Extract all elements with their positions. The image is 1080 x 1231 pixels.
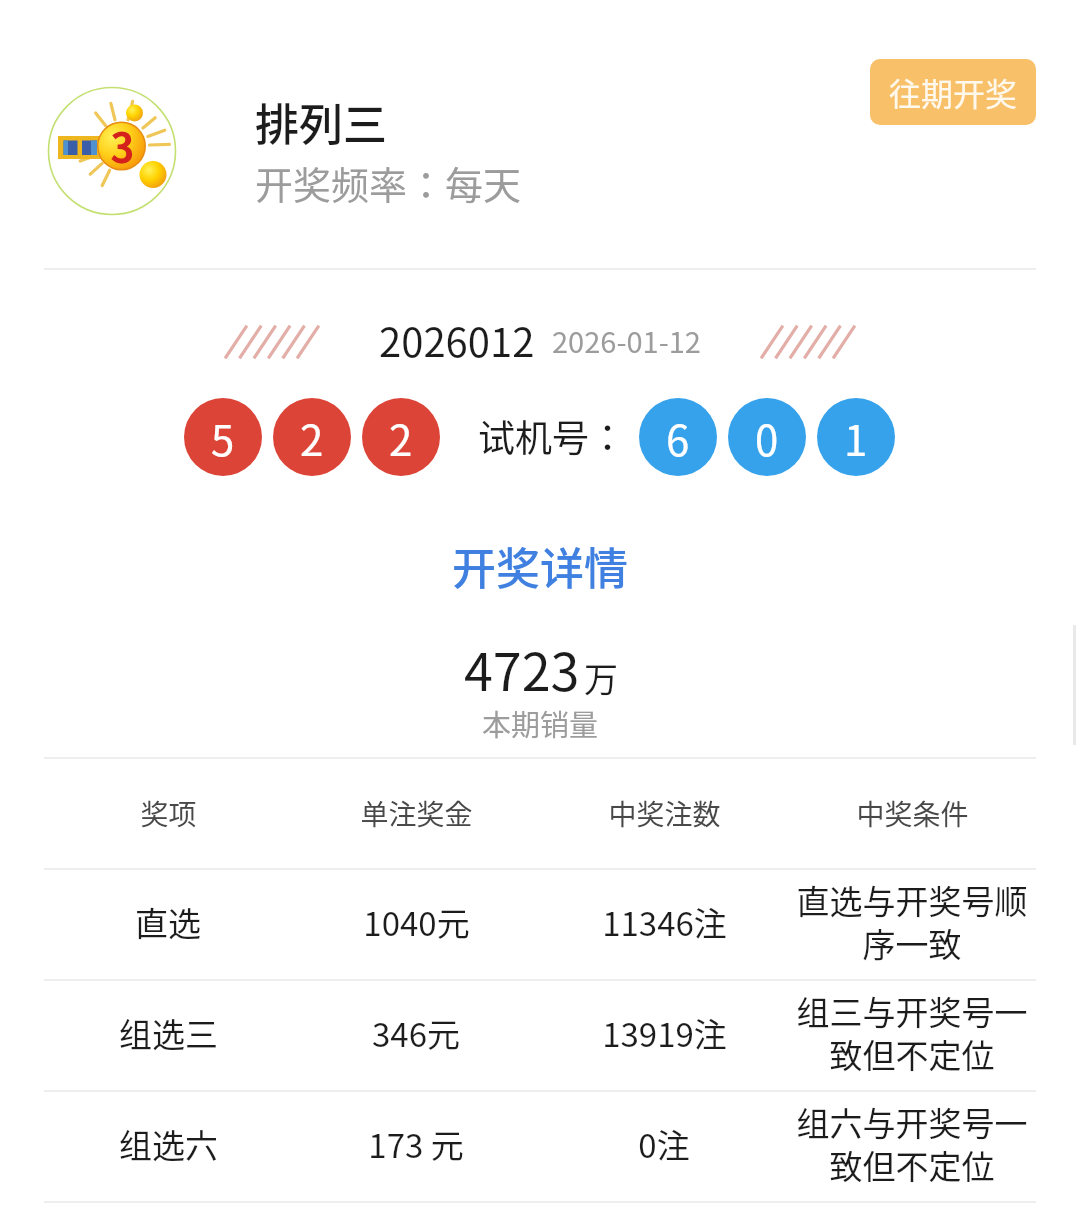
button[interactable]: 直选 [44, 866, 1036, 977]
staticText: 直选 [135, 898, 201, 946]
button[interactable]: 开奖详情 [428, 526, 652, 606]
staticText: 往期开奖 [889, 69, 1018, 115]
staticText: 3 [111, 116, 134, 174]
staticText: 组三与开奖号一致但不定位 [788, 987, 1036, 1078]
staticText: 单注奖金 [360, 793, 473, 834]
button[interactable] [40, 62, 850, 240]
staticText: 中奖条件 [856, 793, 969, 834]
staticText: 6 [666, 407, 690, 468]
staticText: 1 [844, 407, 868, 468]
staticText: 2 [300, 407, 324, 468]
staticText: 4723 [464, 631, 580, 706]
staticText: 1040元 [363, 898, 470, 946]
button[interactable]: 往期开奖 [870, 59, 1036, 125]
staticText: 2026012 [379, 311, 535, 369]
staticText: 173 元 [368, 1120, 464, 1168]
staticText: 试机号： [478, 409, 626, 463]
staticText: 11346注 [602, 898, 727, 946]
staticText: 本期销量 [482, 702, 599, 744]
staticText: 开奖频率：每天 [255, 155, 522, 210]
other: decorative stripes [226, 326, 318, 358]
staticText: 0 [755, 407, 779, 468]
staticText: 346元 [372, 1009, 460, 1057]
staticText: 中奖注数 [608, 793, 721, 834]
staticText: 13919注 [602, 1009, 727, 1057]
staticText: 组六与开奖号一致但不定位 [788, 1098, 1036, 1189]
staticText: 排列三 [255, 90, 387, 154]
button[interactable]: 组选六 [44, 1088, 1036, 1199]
staticText: 奖项 [140, 793, 197, 834]
staticText: 组选三 [119, 1009, 218, 1057]
staticText: 5 [211, 407, 235, 468]
staticText: 0注 [638, 1120, 690, 1168]
staticText: 开奖详情 [452, 534, 628, 598]
button[interactable]: 组选三 [44, 977, 1036, 1088]
staticText: 直选与开奖号顺序一致 [788, 876, 1036, 967]
staticText: 万 [584, 653, 618, 702]
other: decorative stripes [762, 326, 854, 358]
other: Pailie 3 lottery logo [47, 86, 177, 216]
staticText: 2026-01-12 [552, 319, 701, 361]
staticText: 2 [389, 407, 413, 468]
staticText: 组选六 [119, 1120, 218, 1168]
